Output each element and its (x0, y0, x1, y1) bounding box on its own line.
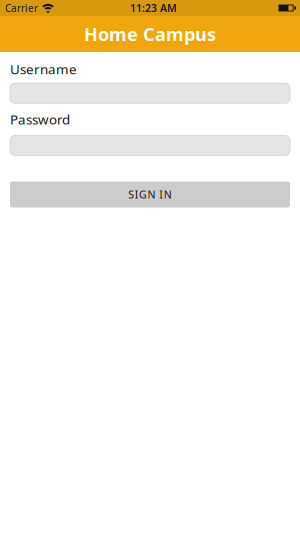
staticText: SIGN IN (128, 187, 172, 202)
button[interactable]: Password (10, 135, 290, 155)
staticText: Username (10, 60, 77, 78)
staticText: Password (10, 110, 70, 128)
staticText: 11:23 AM (130, 1, 177, 15)
staticText: Home Campus (84, 22, 216, 46)
staticText: Carrier (5, 1, 38, 15)
button[interactable]: SIGN IN (10, 181, 290, 207)
